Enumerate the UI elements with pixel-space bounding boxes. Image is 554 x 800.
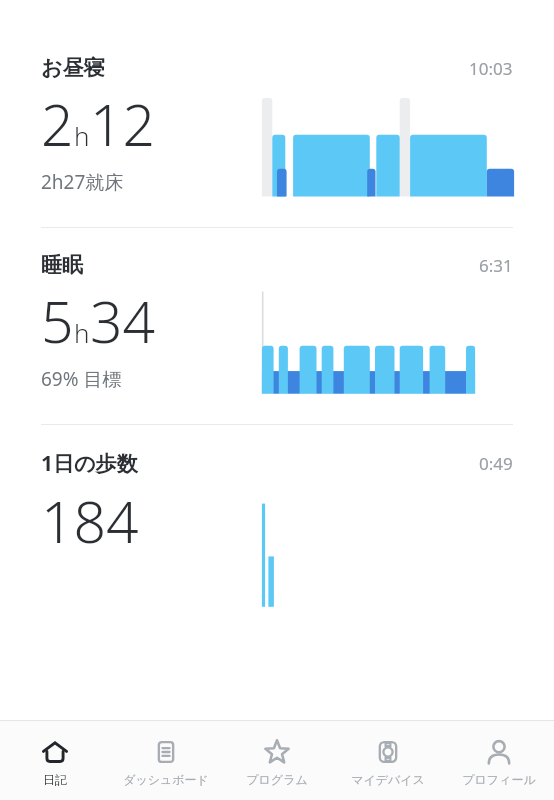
staticText: 34 xyxy=(90,282,156,360)
staticText: ダッシュボード xyxy=(123,772,209,787)
button[interactable]: プログラム xyxy=(221,721,332,800)
staticText: お昼寝 xyxy=(41,55,105,81)
staticText: マイデバイス xyxy=(351,772,425,787)
staticText: 5 xyxy=(41,282,74,360)
staticText: 69% 目標 xyxy=(41,366,122,392)
staticText: 2 xyxy=(41,85,74,163)
button[interactable]: 日記 xyxy=(0,721,110,800)
staticText: 6:31 xyxy=(479,254,513,277)
staticText: 1日の歩数 xyxy=(41,449,138,478)
staticText: 0:49 xyxy=(479,452,513,475)
staticText: 睡眠 xyxy=(41,252,83,278)
staticText: 2h27就床 xyxy=(41,169,124,195)
staticText: h xyxy=(74,118,90,153)
staticText: 10:03 xyxy=(469,57,513,80)
staticText: プログラム xyxy=(246,772,308,787)
button[interactable]: お昼寝 xyxy=(0,55,554,205)
button[interactable]: マイデバイス xyxy=(332,721,443,800)
button[interactable]: 睡眠 xyxy=(0,252,554,402)
button[interactable]: 1日の歩数 xyxy=(0,449,554,602)
staticText: 日記 xyxy=(43,772,67,787)
button[interactable]: プロフィール xyxy=(443,721,554,800)
staticText: 184 xyxy=(41,482,139,560)
button[interactable]: ダッシュボード xyxy=(110,721,221,800)
staticText: プロフィール xyxy=(462,772,536,787)
staticText: h xyxy=(74,315,90,350)
staticText: 12 xyxy=(90,85,156,163)
